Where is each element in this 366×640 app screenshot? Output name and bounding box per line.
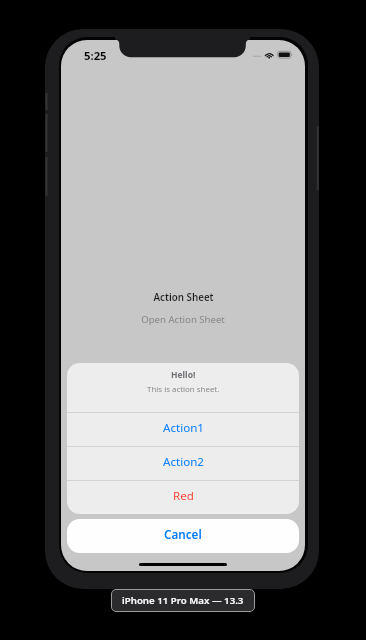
staticText: This is action sheet.: [147, 384, 220, 395]
button[interactable]: Cancel: [67, 519, 299, 553]
staticText: Action1: [163, 420, 204, 436]
staticText: Hello!: [171, 369, 196, 381]
staticText: Cancel: [164, 526, 202, 542]
button[interactable]: Action1: [67, 413, 299, 446]
staticText: Action2: [163, 454, 204, 470]
staticText: 5:25: [84, 48, 107, 63]
staticText: iPhone 11 Pro Max — 13.3: [122, 594, 244, 607]
staticText: Action Sheet: [153, 291, 214, 304]
button[interactable]: Action2: [67, 447, 299, 480]
button[interactable]: Open Action Sheet: [141, 313, 225, 326]
staticText: Open Action Sheet: [141, 313, 225, 326]
button[interactable]: iPhone 11 Pro Max — 13.3: [111, 589, 255, 612]
button[interactable]: Red: [67, 481, 299, 514]
staticText: Red: [173, 488, 194, 504]
